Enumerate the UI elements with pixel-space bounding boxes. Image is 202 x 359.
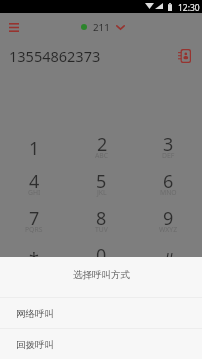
button[interactable]: 2 [68,132,135,169]
button[interactable]: * [0,243,68,280]
staticText: 1 [29,136,40,161]
button[interactable]: 回拨呼叫 [0,329,202,359]
staticText: 3 [163,132,174,157]
button[interactable]: 4 [0,169,68,206]
staticText: 8 [96,206,107,231]
staticText: 12:30 [178,2,200,14]
staticText: 13554862373 [9,46,101,66]
button[interactable]: 5 [68,169,135,206]
button[interactable]: 8 [68,206,135,243]
staticText: 5 [96,169,107,194]
button[interactable]: 6 [135,169,202,206]
staticText: 9 [163,206,174,231]
staticText: ABC [95,151,109,160]
staticText: 6 [163,169,174,194]
staticText: JKL [97,188,107,197]
button[interactable]: Contacts [174,46,194,66]
staticText: TUV [95,225,108,234]
staticText: WXYZ [159,225,178,234]
staticText: # [163,247,175,272]
staticText: 4 [29,169,40,194]
staticText: MNO [160,188,177,197]
button[interactable]: # [135,243,202,280]
button[interactable]: 211 [76,18,131,36]
staticText: 0 [96,243,107,268]
button[interactable]: 1 [0,132,68,169]
button[interactable]: Menu [4,18,23,37]
staticText: GHI [28,188,41,197]
staticText: DEF [162,151,175,160]
staticText: 211 [93,21,110,34]
staticText: * [29,247,39,272]
staticText: PQRS [25,225,43,234]
button[interactable]: 网络呼叫 [0,298,202,328]
button[interactable]: 7 [0,206,68,243]
staticText: 选择呼叫方式 [73,269,130,281]
button[interactable]: 9 [135,206,202,243]
staticText: 回拨呼叫 [16,339,54,351]
button[interactable]: 3 [135,132,202,169]
staticText: 2 [97,132,108,157]
staticText: 网络呼叫 [16,308,54,320]
button[interactable]: 0 [68,243,135,280]
staticText: 7 [29,206,40,231]
